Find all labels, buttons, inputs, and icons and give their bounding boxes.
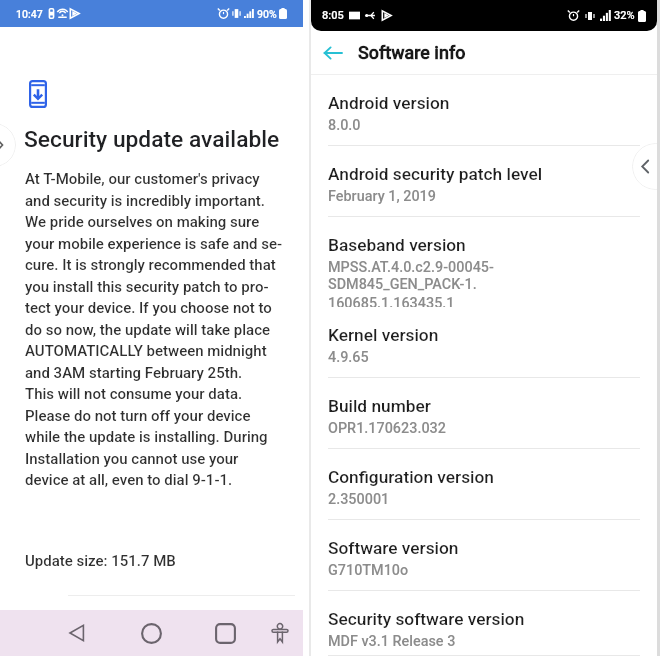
button[interactable]: Build number xyxy=(311,378,657,449)
staticText: 160685.1.163435.1 xyxy=(328,295,455,307)
staticText: We pride ourselves on making sure xyxy=(25,213,260,231)
staticText: MPSS.AT.4.0.c2.9-00045-SDM845_GEN_PACK-1… xyxy=(328,259,640,293)
staticText: 10:47 xyxy=(16,8,43,20)
staticText: AUTOMATICALLY between midnight xyxy=(25,342,267,360)
button[interactable]: Security software version xyxy=(311,591,657,656)
button[interactable]: Kernel version xyxy=(311,307,657,378)
button[interactable]: Back xyxy=(0,610,114,656)
staticText: OPR1.170623.032 xyxy=(328,420,446,437)
staticText: Build number xyxy=(328,396,431,416)
staticText: Please do not turn off your device xyxy=(25,407,251,425)
button[interactable]: Accessibility xyxy=(263,610,303,656)
staticText: February 1, 2019 xyxy=(328,188,436,205)
staticText: 32% xyxy=(614,9,635,22)
staticText: MDF v3.1 Release 3 xyxy=(328,633,456,650)
staticText: tect your device. If you choose not to xyxy=(25,299,272,317)
button[interactable]: Software version xyxy=(311,520,657,591)
staticText: device at all, even to dial 9-1-1. xyxy=(25,471,233,489)
staticText: 8:05 xyxy=(322,9,344,22)
staticText: while the update is installing. During xyxy=(25,428,268,446)
button[interactable]: Back xyxy=(317,37,349,69)
staticText: and security is incredibly important. xyxy=(25,192,265,210)
staticText: your mobile experience is safe and se- xyxy=(25,235,283,253)
button[interactable]: Configuration version xyxy=(311,449,657,520)
staticText: G710TM10o xyxy=(328,562,409,579)
staticText: Android security patch level xyxy=(328,164,543,184)
staticText: do so now, the update will take place xyxy=(25,321,271,339)
staticText: and 3AM starting February 25th. xyxy=(25,364,243,382)
staticText: Security update available xyxy=(24,126,280,153)
staticText: cure. It is strongly recommended that xyxy=(25,256,276,274)
staticText: Update size: 151.7 MB xyxy=(25,552,176,570)
button[interactable]: Baseband version xyxy=(311,217,657,307)
staticText: Installation you cannot use your xyxy=(25,450,239,468)
button[interactable]: Android security patch level xyxy=(311,146,657,217)
staticText: Baseband version xyxy=(328,235,466,255)
staticText: Security software version xyxy=(328,609,525,629)
button[interactable]: Recents xyxy=(188,610,263,656)
staticText: Android version xyxy=(328,93,450,113)
staticText: Configuration version xyxy=(328,467,494,487)
button[interactable]: Next xyxy=(0,123,16,167)
staticText: you install this security patch to pro- xyxy=(25,278,269,296)
staticText: Kernel version xyxy=(328,325,439,345)
button[interactable]: Android version xyxy=(311,75,657,146)
staticText: Software info xyxy=(358,42,466,63)
staticText: 8.0.0 xyxy=(328,117,361,134)
staticText: 90% xyxy=(257,8,277,20)
staticText: At T-Mobile, our customer's privacy xyxy=(25,170,260,188)
staticText: Software version xyxy=(328,538,459,558)
staticText: 2.350001 xyxy=(328,491,390,508)
staticText: 4.9.65 xyxy=(328,349,369,366)
staticText: This will not consume your data. xyxy=(25,385,243,403)
button[interactable]: Home xyxy=(114,610,188,656)
button[interactable]: Previous xyxy=(632,143,660,190)
